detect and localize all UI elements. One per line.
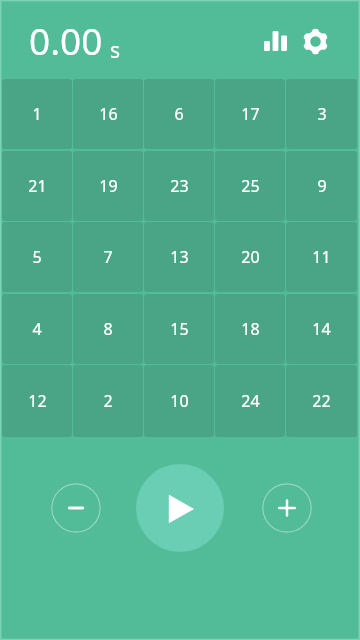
button[interactable]: 14 xyxy=(286,294,357,364)
staticText: 5 xyxy=(32,246,42,268)
button[interactable]: 20 xyxy=(215,222,285,292)
button[interactable]: 16 xyxy=(73,79,143,149)
staticText: 15 xyxy=(170,318,189,340)
staticText: 22 xyxy=(312,390,331,412)
button[interactable]: 18 xyxy=(215,294,285,364)
staticText: 21 xyxy=(28,175,47,197)
staticText: 6 xyxy=(174,103,184,125)
staticText: 23 xyxy=(170,175,189,197)
button[interactable]: 12 xyxy=(2,365,72,437)
staticText: 2 xyxy=(103,390,113,412)
button[interactable]: Statistics xyxy=(252,18,298,64)
button[interactable]: Start xyxy=(136,464,224,552)
staticText: 25 xyxy=(241,175,260,197)
staticText: 1 xyxy=(32,103,42,125)
button[interactable]: 23 xyxy=(144,151,214,221)
staticText: 11 xyxy=(312,246,331,268)
button[interactable]: Settings xyxy=(295,21,335,61)
staticText: 20 xyxy=(241,246,260,268)
staticText: 7 xyxy=(103,246,113,268)
button[interactable]: 24 xyxy=(215,365,285,437)
staticText: 8 xyxy=(103,318,113,340)
button[interactable]: 15 xyxy=(144,294,214,364)
staticText: 12 xyxy=(28,390,47,412)
button[interactable]: Increase xyxy=(262,483,312,533)
staticText: s xyxy=(110,36,121,65)
button[interactable]: 4 xyxy=(2,294,72,364)
button[interactable]: 5 xyxy=(2,222,72,292)
staticText: 18 xyxy=(241,318,260,340)
button[interactable]: 17 xyxy=(215,79,285,149)
staticText: 9 xyxy=(317,175,327,197)
staticText: 0.00 xyxy=(29,15,103,65)
button[interactable]: 6 xyxy=(144,79,214,149)
button[interactable]: 1 xyxy=(2,79,72,149)
button[interactable]: 3 xyxy=(286,79,357,149)
staticText: 19 xyxy=(99,175,118,197)
button[interactable]: Decrease xyxy=(51,483,101,533)
staticText: 10 xyxy=(170,390,189,412)
button[interactable]: 22 xyxy=(286,365,357,437)
button[interactable]: 2 xyxy=(73,365,143,437)
button[interactable]: 13 xyxy=(144,222,214,292)
staticText: 3 xyxy=(317,103,327,125)
staticText: 24 xyxy=(241,390,260,412)
button[interactable]: 11 xyxy=(286,222,357,292)
button[interactable]: 25 xyxy=(215,151,285,221)
button[interactable]: 7 xyxy=(73,222,143,292)
button[interactable]: 8 xyxy=(73,294,143,364)
button[interactable]: 21 xyxy=(2,151,72,221)
button[interactable]: 10 xyxy=(144,365,214,437)
staticText: 17 xyxy=(241,103,260,125)
staticText: 13 xyxy=(170,246,189,268)
staticText: 14 xyxy=(312,318,331,340)
staticText: 16 xyxy=(99,103,118,125)
button[interactable]: 19 xyxy=(73,151,143,221)
button[interactable]: 9 xyxy=(286,151,357,221)
staticText: 4 xyxy=(32,318,42,340)
